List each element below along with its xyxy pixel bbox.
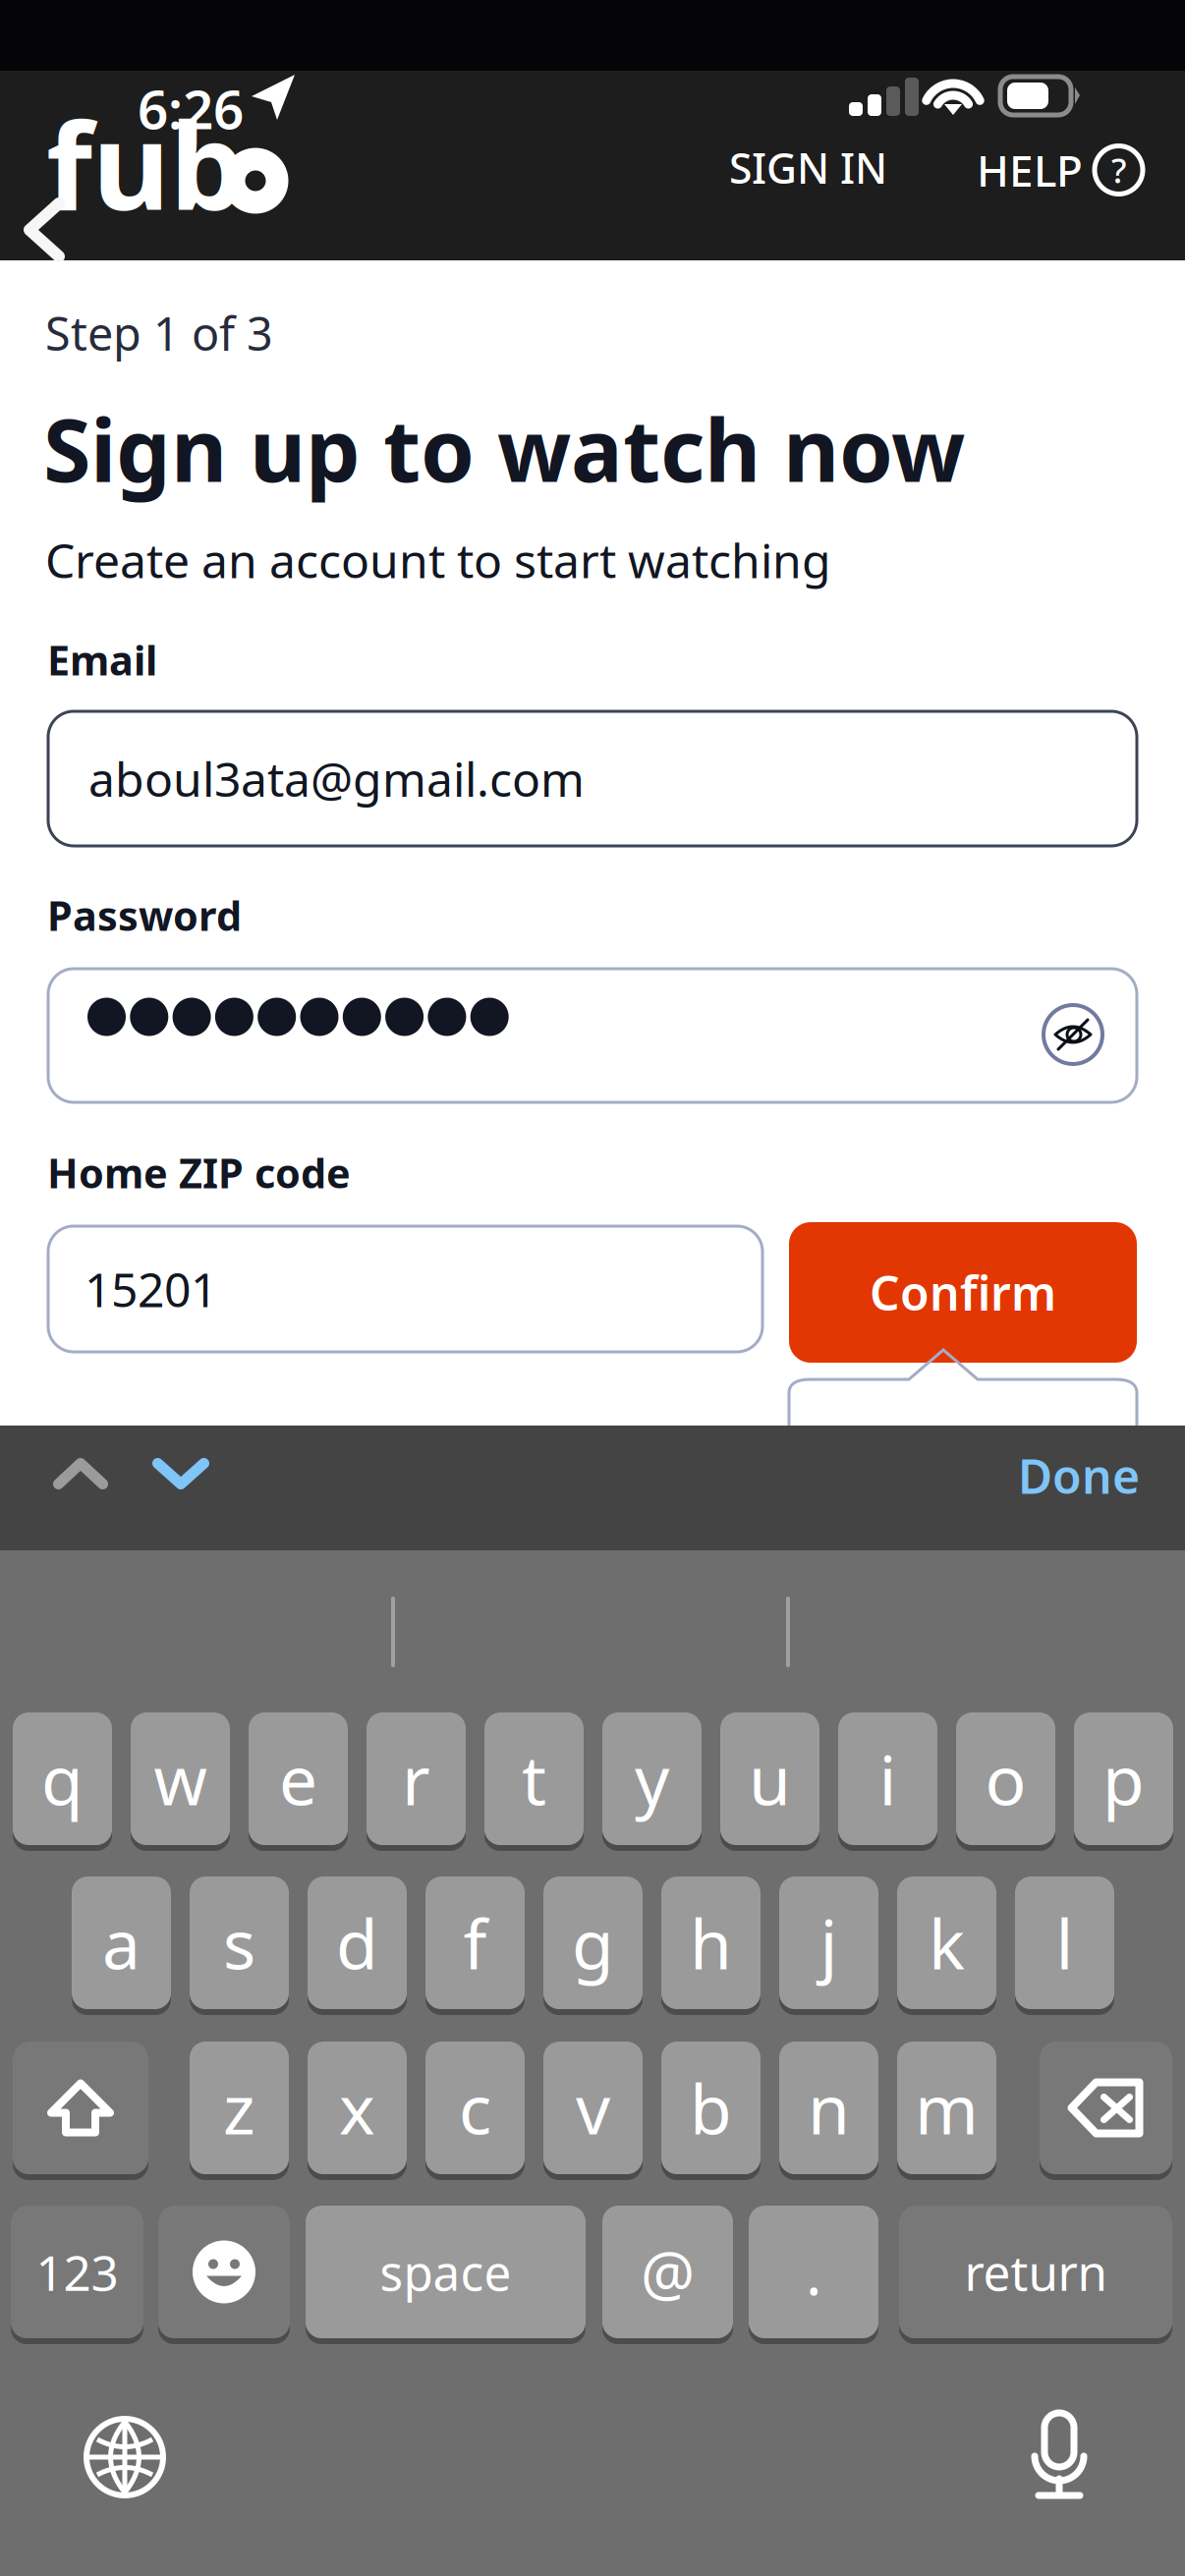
staticText: x xyxy=(339,2063,375,2153)
button[interactable]: Previous field xyxy=(53,1458,108,1489)
staticText: y xyxy=(635,1734,669,1824)
staticText: Step 1 of 3 xyxy=(45,303,273,364)
button[interactable]: f xyxy=(425,1876,525,2015)
button[interactable]: h xyxy=(661,1876,761,2015)
staticText: return xyxy=(964,2240,1107,2304)
button[interactable]: aboul3ata@gmail.com xyxy=(48,711,1137,846)
staticText: @ xyxy=(641,2232,695,2312)
staticText: b xyxy=(690,2063,732,2153)
button[interactable]: w xyxy=(131,1712,230,1851)
button[interactable]: o xyxy=(956,1712,1055,1851)
staticText: Email xyxy=(47,633,157,687)
button[interactable]: p xyxy=(1074,1712,1173,1851)
staticText: Password xyxy=(47,888,242,942)
button[interactable]: Show password xyxy=(1044,1005,1102,1064)
button[interactable]: Emoji xyxy=(158,2206,290,2344)
staticText: i xyxy=(879,1734,897,1824)
staticText: aboul3ata@gmail.com xyxy=(88,747,585,810)
button[interactable]: space xyxy=(306,2206,586,2344)
button[interactable]: HELP xyxy=(977,142,1139,197)
staticText: w xyxy=(154,1734,207,1824)
staticText: space xyxy=(380,2240,511,2304)
staticText: . xyxy=(806,2232,821,2312)
staticText: Done xyxy=(1018,1444,1140,1507)
staticText: 123 xyxy=(36,2240,118,2304)
button[interactable]: Confirm xyxy=(789,1222,1137,1363)
button[interactable]: d xyxy=(308,1876,407,2015)
button[interactable]: 123 xyxy=(11,2206,143,2344)
staticText: u xyxy=(749,1734,791,1824)
staticText: ? xyxy=(1111,147,1126,193)
button[interactable]: 15201 xyxy=(48,1226,762,1352)
button[interactable]: Next keyboard xyxy=(86,2419,163,2495)
staticText: c xyxy=(459,2063,491,2153)
button[interactable]: Done xyxy=(1018,1444,1140,1507)
button[interactable]: l xyxy=(1015,1876,1114,2015)
button[interactable]: y xyxy=(602,1712,702,1851)
button[interactable]: e xyxy=(249,1712,348,1851)
button[interactable]: g xyxy=(543,1876,643,2015)
button[interactable]: u xyxy=(720,1712,819,1851)
button[interactable] xyxy=(48,969,1137,1102)
button[interactable]: k xyxy=(897,1876,996,2015)
staticText: Confirm xyxy=(870,1261,1056,1324)
staticText: r xyxy=(402,1734,430,1824)
button[interactable]: SIGN IN xyxy=(729,140,887,195)
staticText: s xyxy=(223,1898,255,1988)
staticText: z xyxy=(223,2063,255,2153)
button[interactable]: v xyxy=(543,2042,643,2180)
staticText: HELP xyxy=(977,141,1083,199)
staticText: o xyxy=(985,1734,1026,1824)
button[interactable]: x xyxy=(308,2042,407,2180)
staticText: j xyxy=(820,1898,838,1988)
staticText: v xyxy=(576,2063,610,2153)
staticText: Home ZIP code xyxy=(47,1146,351,1199)
staticText: e xyxy=(279,1734,317,1824)
button[interactable]: Delete xyxy=(1040,2042,1172,2180)
staticText: Sign up to watch now xyxy=(43,391,965,506)
button[interactable]: s xyxy=(190,1876,289,2015)
button[interactable]: n xyxy=(779,2042,878,2180)
button[interactable]: q xyxy=(13,1712,112,1851)
button[interactable]: m xyxy=(897,2042,996,2180)
button[interactable]: i xyxy=(838,1712,937,1851)
staticText: f xyxy=(463,1898,487,1988)
button[interactable]: Next field xyxy=(152,1458,209,1489)
staticText: h xyxy=(690,1898,732,1988)
staticText: 6:26 xyxy=(138,73,244,144)
staticText: k xyxy=(929,1898,965,1988)
button[interactable]: Shift xyxy=(13,2042,148,2180)
button[interactable]: b xyxy=(661,2042,761,2180)
staticText: SIGN IN xyxy=(729,140,887,195)
staticText: Create an account to start watching xyxy=(45,529,831,591)
button[interactable]: t xyxy=(484,1712,584,1851)
button[interactable]: j xyxy=(779,1876,878,2015)
staticText: n xyxy=(808,2063,850,2153)
staticText: t xyxy=(522,1734,546,1824)
staticText: 15201 xyxy=(85,1258,217,1320)
button[interactable]: . xyxy=(749,2206,878,2344)
staticText: p xyxy=(1102,1734,1145,1824)
button[interactable]: z xyxy=(190,2042,289,2180)
staticText: l xyxy=(1056,1898,1073,1988)
button[interactable]: return xyxy=(899,2206,1172,2344)
staticText: m xyxy=(915,2063,979,2153)
button[interactable]: a xyxy=(72,1876,171,2015)
staticText: g xyxy=(572,1898,614,1988)
button[interactable]: c xyxy=(425,2042,525,2180)
staticText: d xyxy=(336,1898,378,1988)
button[interactable]: Dictate xyxy=(1031,2412,1088,2502)
button[interactable]: @ xyxy=(602,2206,733,2344)
button[interactable]: Back xyxy=(22,196,69,263)
staticText: fub xyxy=(46,84,246,243)
button[interactable]: r xyxy=(367,1712,466,1851)
staticText: q xyxy=(41,1734,84,1824)
staticText: a xyxy=(102,1898,141,1988)
